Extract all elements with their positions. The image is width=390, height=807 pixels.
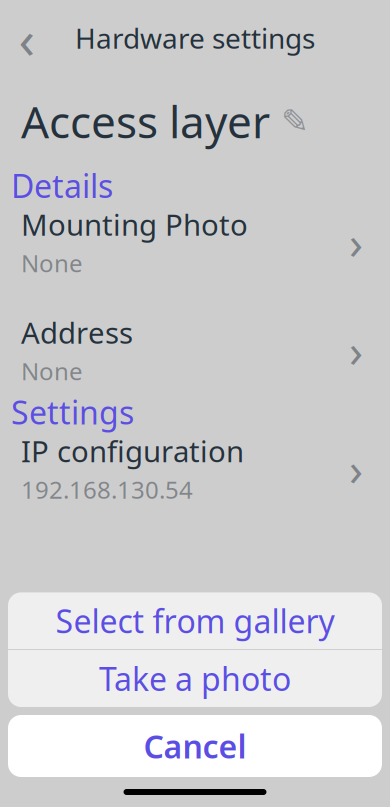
staticText: Cancel xyxy=(143,725,246,767)
staticText: Select from gallery xyxy=(55,600,334,642)
staticText: IP configuration xyxy=(21,431,244,470)
button[interactable]: Back xyxy=(0,15,54,61)
button[interactable]: Address xyxy=(0,319,390,381)
button[interactable]: Edit name xyxy=(280,104,310,138)
staticText: › xyxy=(349,438,363,498)
staticText: ‹ xyxy=(18,3,35,73)
button[interactable]: Mounting Photo xyxy=(0,211,390,273)
button[interactable]: IP configuration xyxy=(0,437,390,499)
staticText: Address xyxy=(21,313,133,352)
staticText: None xyxy=(21,355,83,387)
button[interactable]: Select from gallery xyxy=(8,592,382,649)
staticText: Mounting Photo xyxy=(21,205,248,244)
staticText: 192.168.130.54 xyxy=(21,473,193,505)
staticText: None xyxy=(21,247,83,279)
staticText: Details xyxy=(11,164,113,207)
staticText: Settings xyxy=(11,391,134,433)
button[interactable]: Cancel xyxy=(8,715,382,777)
staticText: › xyxy=(349,212,363,272)
staticText: Take a photo xyxy=(99,657,291,700)
staticText: › xyxy=(349,320,363,380)
staticText: ✎ xyxy=(281,102,309,140)
button[interactable]: Take a photo xyxy=(8,650,382,707)
staticText: Hardware settings xyxy=(75,19,315,57)
staticText: Access layer xyxy=(21,92,270,150)
